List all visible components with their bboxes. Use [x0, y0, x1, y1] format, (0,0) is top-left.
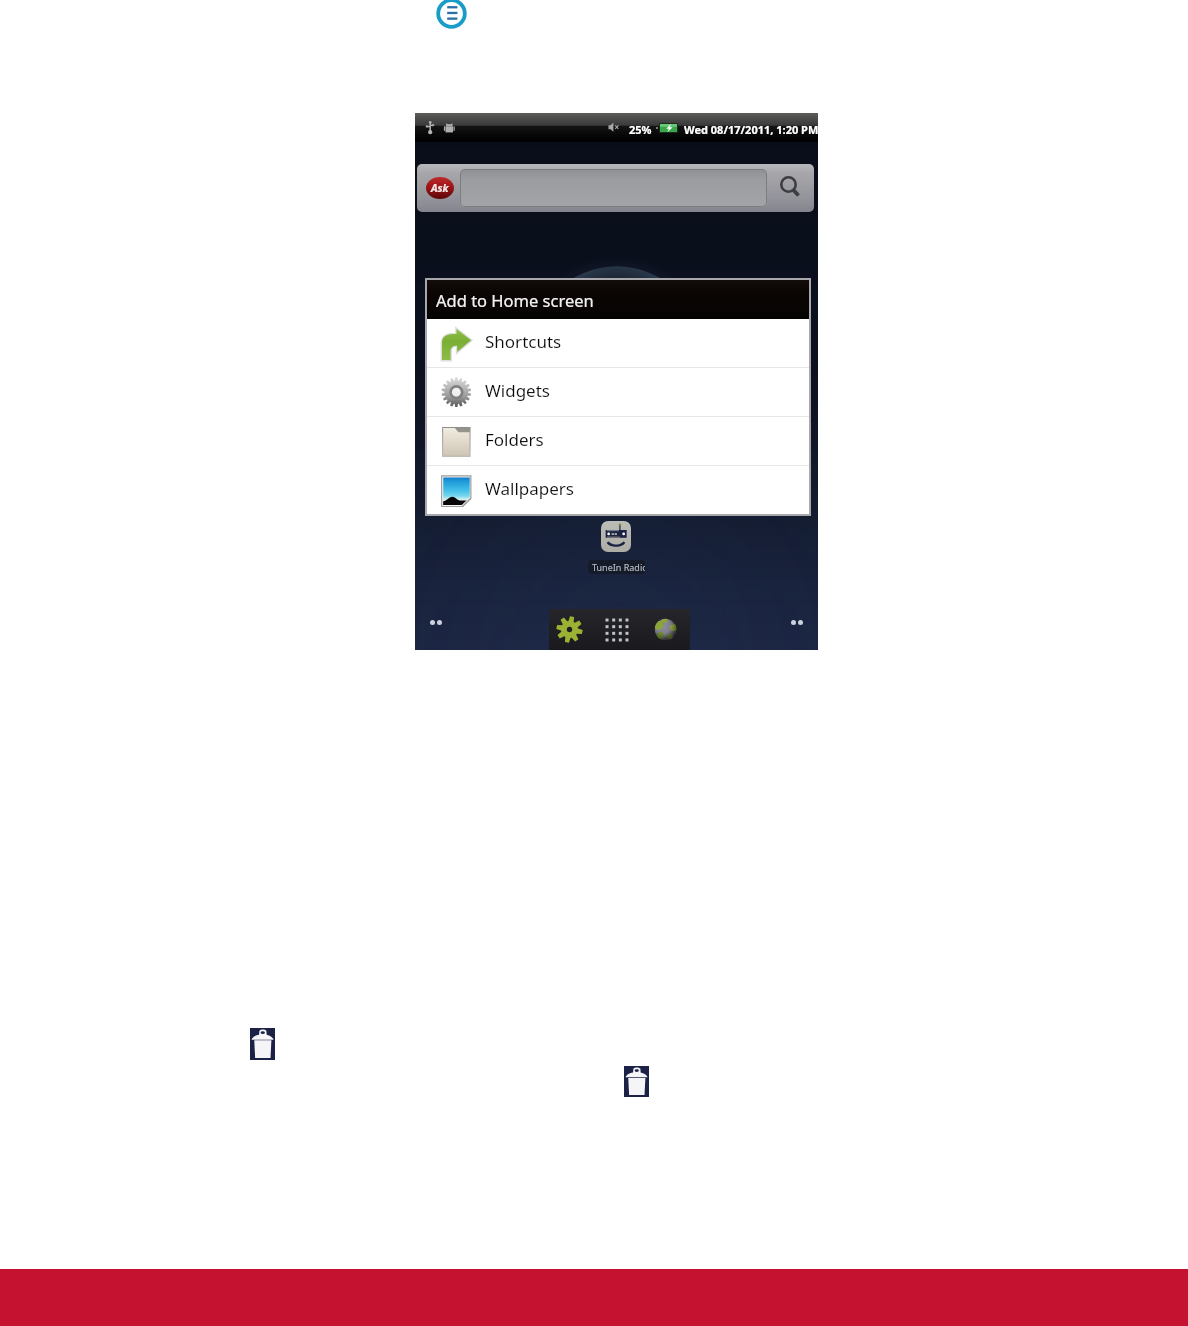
staticText: Widgets — [485, 379, 550, 402]
staticText: Ask — [431, 181, 449, 195]
staticText: Shortcuts — [485, 330, 562, 353]
staticText: Wallpapers — [485, 477, 574, 500]
staticText: Folders — [485, 428, 544, 451]
button[interactable]: TuneIn Radio — [601, 521, 631, 552]
staticText: TuneIn Radio — [592, 561, 645, 573]
button[interactable]: All apps — [605, 618, 629, 642]
button[interactable]: Ask — [417, 164, 814, 212]
staticText: Wed 08/17/2011, 1:20 PM — [684, 122, 819, 137]
staticText: Add to Home screen — [436, 289, 594, 311]
button[interactable]: Shortcuts — [427, 319, 809, 367]
button[interactable]: Search — [769, 167, 813, 209]
button[interactable]: Wallpapers — [427, 466, 809, 514]
staticText: 25% — [629, 122, 652, 137]
button[interactable]: Menu — [436, 0, 467, 29]
button[interactable]: Folders — [427, 417, 809, 465]
button[interactable]: Browser — [654, 618, 677, 641]
button[interactable]: Widgets — [427, 368, 809, 416]
button[interactable]: Settings — [556, 616, 583, 643]
